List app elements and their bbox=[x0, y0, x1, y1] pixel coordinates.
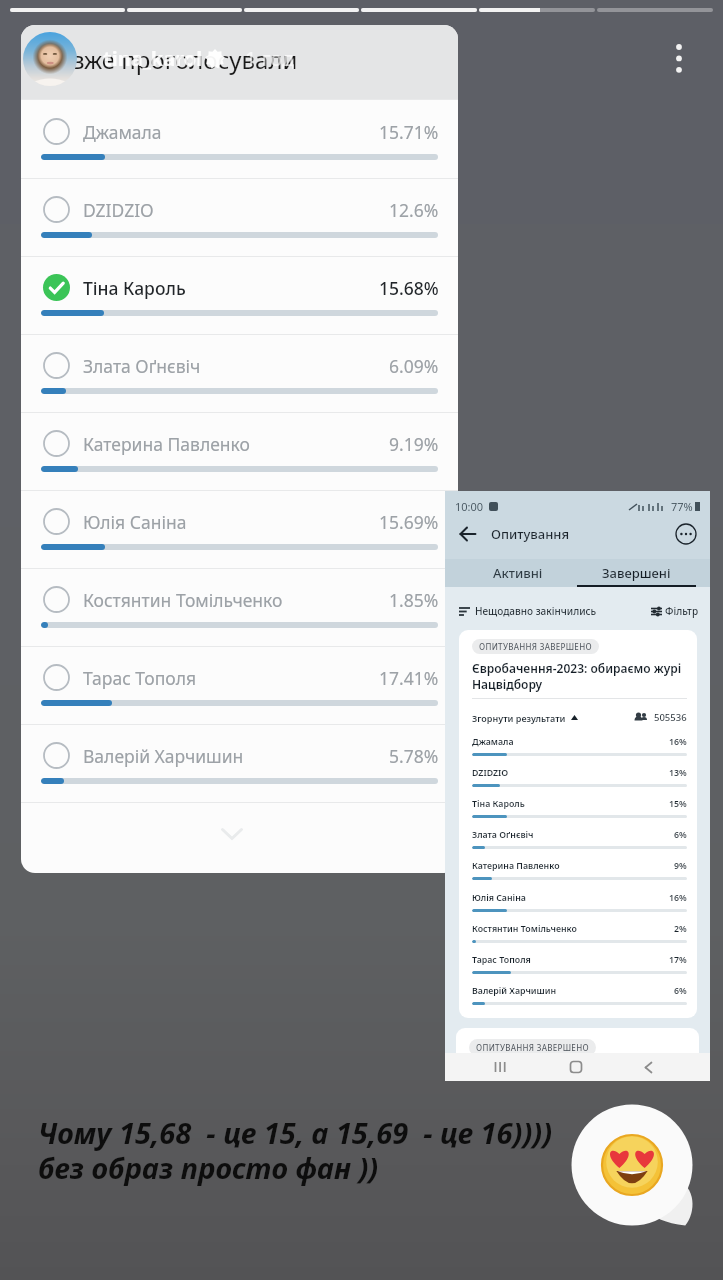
staticText: ОПИТУВАННЯ ЗАВЕРШЕНО bbox=[479, 641, 592, 652]
staticText: Фільтр bbox=[665, 604, 699, 618]
button[interactable]: Джамала bbox=[21, 100, 458, 178]
staticText: 505536 bbox=[654, 711, 687, 724]
button[interactable]: Активні bbox=[458, 559, 577, 587]
staticText: 17% bbox=[669, 954, 687, 966]
button[interactable]: Катерина Павленко bbox=[21, 412, 458, 490]
staticText: Костянтин Томільченко bbox=[83, 588, 283, 612]
button[interactable]: Home bbox=[565, 1056, 587, 1078]
button[interactable]: Костянтин Томільченко bbox=[21, 568, 458, 646]
button[interactable]: Show more bbox=[212, 814, 252, 854]
button[interactable]: More options bbox=[659, 36, 699, 76]
button[interactable]: Валерій Харчишин bbox=[21, 724, 458, 802]
button[interactable]: Back bbox=[459, 525, 477, 543]
staticText: Злата Оґнєвіч bbox=[472, 829, 534, 841]
staticText: вже проголосували bbox=[71, 43, 298, 76]
staticText: Чому 15,68 - це 15, а 15,69 - це 16)))) … bbox=[38, 1113, 553, 1188]
staticText: 15% bbox=[669, 798, 687, 810]
staticText: Нещодавно закінчились bbox=[475, 604, 597, 618]
staticText: Катерина Павленко bbox=[472, 860, 560, 872]
staticText: Катерина Павленко bbox=[83, 432, 250, 456]
staticText: Активні bbox=[493, 564, 543, 582]
staticText: Костянтин Томільченко bbox=[472, 923, 577, 935]
staticText: Злата Оґнєвіч bbox=[83, 354, 201, 378]
staticText: Згорнути результати bbox=[472, 712, 566, 724]
staticText: Валерій Харчишин bbox=[83, 744, 244, 768]
button[interactable]: Юлія Саніна bbox=[21, 490, 458, 568]
staticText: 15.69% bbox=[379, 510, 439, 534]
staticText: 12.6% bbox=[389, 198, 439, 222]
staticText: DZIDZIO bbox=[83, 198, 154, 222]
button[interactable]: Recents bbox=[489, 1056, 511, 1078]
staticText: Джамала bbox=[83, 120, 162, 144]
staticText: 16% bbox=[669, 736, 687, 748]
staticText: Завершені bbox=[602, 564, 671, 582]
staticText: 16% bbox=[669, 892, 687, 904]
button[interactable]: Завершені bbox=[577, 559, 696, 587]
staticText: 17.41% bbox=[379, 666, 439, 690]
button[interactable]: Злата Оґнєвіч bbox=[21, 334, 458, 412]
button[interactable]: Тарас Тополя bbox=[21, 646, 458, 724]
button[interactable]: DZIDZIO bbox=[21, 178, 458, 256]
staticText: 6% bbox=[674, 829, 687, 841]
staticText: 1.85% bbox=[389, 588, 439, 612]
staticText: 1 год bbox=[245, 45, 295, 72]
staticText: 9% bbox=[674, 860, 687, 872]
staticText: Опитування bbox=[491, 525, 570, 543]
staticText: Тіна Кароль bbox=[472, 798, 525, 810]
staticText: Тарас Тополя bbox=[83, 666, 197, 690]
staticText: Валерій Харчишин bbox=[472, 985, 557, 997]
staticText: 6% bbox=[674, 985, 687, 997]
staticText: 9.19% bbox=[389, 432, 439, 456]
staticText: 2% bbox=[674, 923, 687, 935]
staticText: Юлія Саніна bbox=[83, 510, 187, 534]
staticText: 13% bbox=[669, 767, 687, 779]
staticText: Тарас Тополя bbox=[472, 954, 531, 966]
button[interactable]: Back bbox=[637, 1056, 659, 1078]
staticText: DZIDZIO bbox=[472, 767, 509, 779]
staticText: 10:00 bbox=[455, 499, 484, 514]
staticText: Юлія Саніна bbox=[472, 892, 526, 904]
staticText: Тіна Кароль bbox=[83, 276, 186, 300]
button[interactable]: Тіна Кароль bbox=[21, 256, 458, 334]
staticText: 15.68% bbox=[379, 276, 439, 300]
staticText: 6.09% bbox=[389, 354, 439, 378]
button[interactable]: Menu bbox=[675, 523, 697, 545]
staticText: tina_karol bbox=[103, 45, 203, 72]
staticText: ОПИТУВАННЯ ЗАВЕРШЕНО bbox=[476, 1042, 589, 1053]
staticText: 15.71% bbox=[379, 120, 439, 144]
staticText: Джамала bbox=[472, 736, 514, 748]
staticText: 5.78% bbox=[389, 744, 439, 768]
staticText: 77% bbox=[671, 499, 693, 514]
staticText: Євробачення-2023: обираємо журі Нацвідбо… bbox=[472, 660, 697, 692]
